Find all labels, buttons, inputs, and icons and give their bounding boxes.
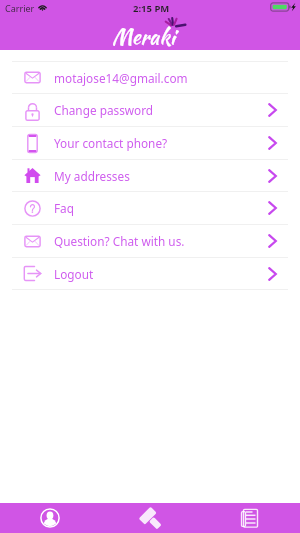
button[interactable]: Orders: [200, 503, 300, 533]
staticText: Meraki: [112, 21, 175, 52]
button[interactable]: Your contact phone?: [0, 127, 300, 159]
staticText: Your contact phone?: [54, 135, 168, 151]
staticText: Question? Chat with us.: [54, 233, 185, 249]
staticText: Carrier: [5, 2, 35, 14]
button[interactable]: Profile: [0, 503, 100, 533]
button[interactable]: motajose14@gmail.com: [0, 62, 300, 93]
staticText: Logout: [54, 266, 94, 282]
staticText: My addresses: [54, 168, 130, 184]
staticText: Change password: [54, 102, 154, 118]
staticText: 2:15 PM: [133, 2, 170, 15]
button[interactable]: My addresses: [0, 160, 300, 191]
staticText: Faq: [54, 200, 74, 216]
button[interactable]: Logout: [0, 258, 300, 289]
button[interactable]: Faq: [0, 192, 300, 224]
button[interactable]: Question? Chat with us.: [0, 225, 300, 257]
button[interactable]: Change password: [0, 94, 300, 126]
staticText: motajose14@gmail.com: [54, 70, 188, 86]
button[interactable]: Auctions: [100, 503, 200, 533]
